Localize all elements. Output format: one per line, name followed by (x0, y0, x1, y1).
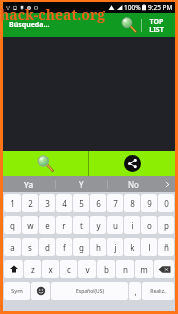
button[interactable]: Español(US) (51, 282, 128, 300)
staticText: Y (79, 179, 84, 190)
button[interactable]: k (124, 238, 140, 256)
staticText: 4 (62, 198, 67, 209)
staticText: k (130, 242, 135, 253)
button[interactable]: 3 (39, 194, 55, 212)
button[interactable]: f (56, 238, 72, 256)
staticText: y (96, 220, 101, 231)
button[interactable]: v (78, 260, 96, 278)
button[interactable]: 7 (107, 194, 123, 212)
other: Shift (9, 264, 19, 274)
button[interactable]: 2 (22, 194, 38, 212)
button[interactable]: y (90, 216, 106, 234)
button[interactable]: i (124, 216, 140, 234)
button[interactable]: Shift (4, 260, 23, 278)
staticText: TOP LIST (149, 17, 164, 34)
staticText: , (134, 286, 137, 297)
button[interactable]: o (141, 216, 157, 234)
button[interactable]: x (42, 260, 59, 278)
button[interactable]: Y (56, 176, 107, 192)
button[interactable]: l (141, 238, 157, 256)
staticText: 2 (28, 198, 33, 209)
button[interactable]: Emoji (31, 282, 50, 300)
staticText: g (79, 242, 84, 253)
staticText: 100% (124, 3, 141, 12)
staticText: Ya (24, 179, 34, 190)
button[interactable]: Search (3, 151, 88, 176)
staticText: e (45, 220, 50, 231)
staticText: 6 (96, 198, 101, 209)
button[interactable]: No (108, 176, 159, 192)
button[interactable]: Realiz.. (142, 282, 174, 300)
button[interactable]: d (39, 238, 55, 256)
button[interactable]: t (73, 216, 89, 234)
staticText: 8 (130, 198, 135, 209)
button[interactable]: 8 (124, 194, 140, 212)
staticText: 0 (164, 198, 169, 209)
staticText: l (148, 242, 151, 253)
button[interactable]: a (4, 238, 21, 256)
staticText: hack-cheat.org (0, 5, 106, 24)
staticText: Búsqueda... (9, 20, 50, 30)
button[interactable]: 4 (56, 194, 72, 212)
button[interactable]: u (107, 216, 123, 234)
button[interactable]: q (4, 216, 21, 234)
staticText: 1 (10, 198, 15, 209)
staticText: q (10, 220, 15, 231)
staticText: i (131, 220, 134, 231)
button[interactable]: z (24, 260, 41, 278)
button[interactable]: c (60, 260, 77, 278)
staticText: c (67, 264, 71, 275)
button[interactable]: s (22, 238, 38, 256)
staticText: ñ (164, 242, 169, 253)
staticText: 9:25 PM (148, 3, 173, 12)
staticText: w (27, 220, 34, 231)
staticText: v (85, 264, 90, 275)
button[interactable]: Search (117, 13, 141, 37)
button[interactable]: Sym (4, 282, 30, 300)
staticText: b (104, 264, 109, 275)
staticText: Sym (11, 287, 23, 295)
staticText: 5 (79, 198, 84, 209)
button[interactable]: r (56, 216, 72, 234)
staticText: s (28, 242, 32, 253)
staticText: d (45, 242, 50, 253)
button[interactable]: 6 (90, 194, 106, 212)
staticText: a (10, 242, 15, 253)
staticText: o (147, 220, 152, 231)
button[interactable]: 9 (141, 194, 157, 212)
button[interactable]: n (116, 260, 134, 278)
staticText: z (31, 264, 35, 275)
staticText: Realiz.. (150, 288, 167, 295)
button[interactable]: j (107, 238, 123, 256)
button[interactable]: w (22, 216, 38, 234)
staticText: n (123, 264, 128, 275)
button[interactable]: 1 (4, 194, 21, 212)
staticText: 9 (147, 198, 152, 209)
staticText: f (63, 242, 66, 253)
button[interactable]: , (129, 282, 141, 300)
button[interactable]: 0 (158, 194, 174, 212)
button[interactable]: Ya (3, 176, 55, 192)
button[interactable]: p (158, 216, 174, 234)
staticText: h (96, 242, 101, 253)
staticText: 7 (113, 198, 118, 209)
button[interactable]: Backspace (154, 260, 174, 278)
button[interactable]: m (135, 260, 153, 278)
button[interactable]: g (73, 238, 89, 256)
staticText: 3 (45, 198, 50, 209)
staticText: t (80, 220, 83, 231)
staticText: u (113, 220, 118, 231)
button[interactable]: ñ (158, 238, 174, 256)
button[interactable]: More suggestions (159, 176, 175, 192)
button[interactable]: e (39, 216, 55, 234)
staticText: j (114, 242, 117, 253)
other: Backspace (158, 265, 171, 274)
staticText: p (164, 220, 169, 231)
button[interactable]: 5 (73, 194, 89, 212)
other: Emoji (36, 286, 46, 296)
staticText: Español(US) (76, 288, 104, 295)
button[interactable]: h (90, 238, 106, 256)
button[interactable]: b (97, 260, 115, 278)
button[interactable]: Share (89, 151, 175, 176)
button[interactable]: TOP LIST (142, 13, 170, 37)
